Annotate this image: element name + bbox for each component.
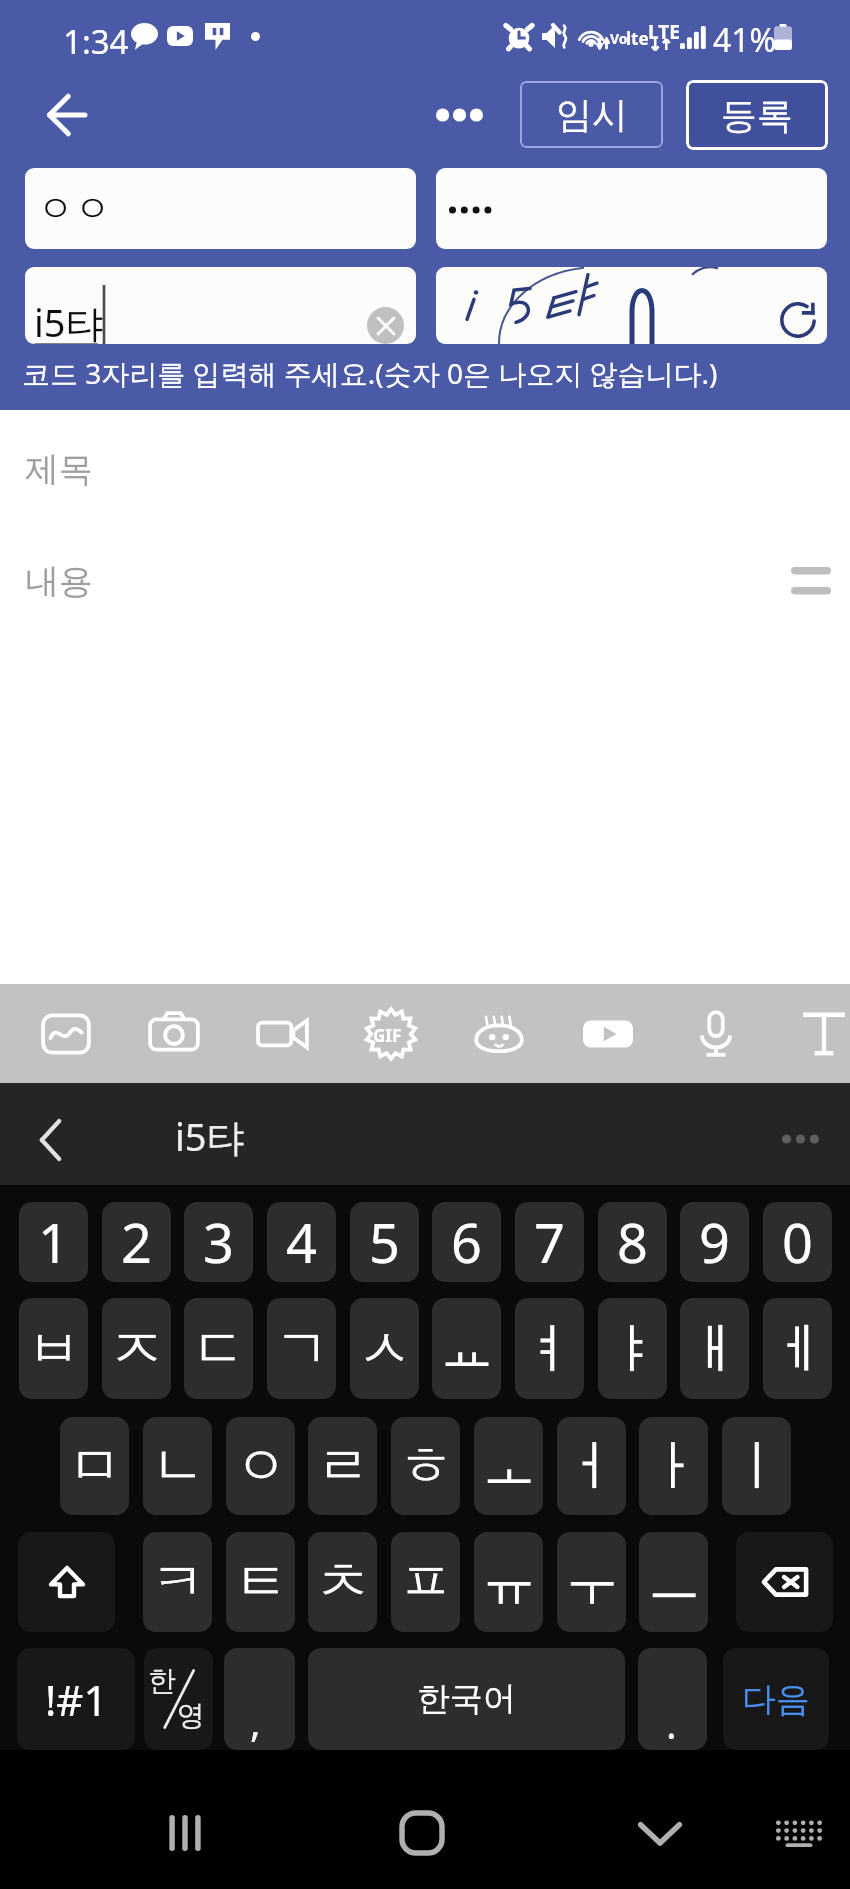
staticText: i5탸 (175, 1110, 245, 1162)
button[interactable]: Shift (18, 1532, 115, 1632)
button[interactable]: ㄹ (308, 1417, 377, 1515)
button[interactable]: ㅊ (308, 1532, 377, 1632)
staticText: ㅂ (27, 1315, 81, 1383)
button[interactable]: GIF (339, 988, 443, 1079)
button[interactable]: 2 (102, 1202, 171, 1282)
button[interactable]: Hide keyboard (605, 1783, 715, 1883)
button[interactable]: 한국어 (308, 1648, 625, 1750)
button[interactable]: 6 (432, 1202, 501, 1282)
button[interactable]: ㅕ (515, 1298, 584, 1399)
button[interactable]: ㅣ (722, 1417, 791, 1515)
staticText: ㅍ (399, 1548, 453, 1616)
staticText: 다음 (742, 1678, 810, 1721)
staticText: ㅛ (440, 1315, 494, 1383)
button[interactable]: ㅜ (557, 1532, 626, 1632)
staticText: ㅎ (399, 1432, 453, 1500)
staticText: ㅜ (565, 1548, 619, 1616)
button[interactable]: ㅈ (102, 1298, 171, 1399)
button[interactable]: Keyboard switcher (745, 1783, 850, 1883)
staticText: lte (626, 27, 649, 50)
staticText: ㅗ (482, 1432, 536, 1500)
button[interactable]: ㅂ (19, 1298, 88, 1399)
button[interactable]: 임시 (520, 81, 663, 148)
button[interactable]: ㅅ (350, 1298, 419, 1399)
button[interactable]: ㅡ (639, 1532, 708, 1632)
staticText: ㅁ (68, 1432, 122, 1500)
button[interactable]: Clear text (367, 307, 404, 344)
button[interactable]: ㅇ (226, 1417, 295, 1515)
button[interactable]: ㅏ (639, 1417, 708, 1515)
staticText: !#1 (45, 1671, 108, 1728)
button[interactable]: Text formatting (780, 550, 842, 612)
button[interactable]: 4 (267, 1202, 336, 1282)
button[interactable]: 다음 (723, 1648, 829, 1750)
button[interactable]: Refresh captcha (436, 267, 827, 344)
button[interactable]: 8 (598, 1202, 667, 1282)
button[interactable]: Voice input (664, 988, 768, 1079)
button[interactable]: ㅌ (226, 1532, 295, 1632)
staticText: ㅌ (234, 1548, 288, 1616)
staticText: 4 (286, 1205, 317, 1279)
button[interactable]: !#1 (17, 1648, 135, 1750)
staticText: 2 (121, 1205, 152, 1279)
button[interactable]: ㄴ (143, 1417, 212, 1515)
staticText: , (250, 1694, 261, 1748)
button[interactable]: 등록 (686, 80, 828, 150)
staticText: ㅔ (771, 1315, 825, 1383)
button[interactable]: More (768, 1114, 832, 1164)
button[interactable]: More options (424, 88, 494, 142)
button[interactable]: Video (231, 988, 335, 1079)
staticText: ㅕ (523, 1315, 577, 1383)
button[interactable] (436, 168, 827, 249)
button[interactable]: Switch language (144, 1648, 213, 1750)
staticText: ㅏ (647, 1432, 701, 1500)
staticText: ㅐ (688, 1315, 742, 1383)
staticText: ㅡ (647, 1548, 701, 1616)
staticText: . (666, 1696, 677, 1750)
button[interactable]: 1 (19, 1202, 88, 1282)
staticText: ㄴ (151, 1432, 205, 1500)
button[interactable]: ㄱ (267, 1298, 336, 1399)
button[interactable]: YouTube (556, 988, 660, 1079)
button[interactable]: Text style (772, 988, 850, 1079)
staticText: 7 (534, 1205, 565, 1279)
button[interactable]: ㅁ (60, 1417, 129, 1515)
button[interactable]: Home (367, 1783, 477, 1883)
button[interactable]: ㅐ (680, 1298, 749, 1399)
button[interactable]: , (224, 1648, 295, 1750)
button[interactable]: Recents (130, 1783, 240, 1883)
staticText: 한 (148, 1663, 176, 1698)
button[interactable]: ㅎ (391, 1417, 460, 1515)
button[interactable]: 5 (350, 1202, 419, 1282)
staticText: 0 (782, 1205, 813, 1279)
button[interactable]: Camera (122, 988, 226, 1079)
button[interactable]: ㅍ (391, 1532, 460, 1632)
button[interactable]: Backspace (736, 1532, 833, 1632)
button[interactable]: ㅠ (474, 1532, 543, 1632)
button[interactable]: ㅔ (763, 1298, 832, 1399)
button[interactable]: Refresh captcha (770, 295, 826, 344)
button[interactable]: ㅑ (598, 1298, 667, 1399)
button[interactable]: ㅇㅇ (25, 168, 416, 249)
button[interactable]: ㄷ (184, 1298, 253, 1399)
button[interactable]: ㅛ (432, 1298, 501, 1399)
button[interactable]: . (638, 1648, 707, 1750)
button[interactable]: Sticker (447, 988, 551, 1079)
staticText: ㅈ (110, 1315, 164, 1383)
button[interactable]: i5탸 (25, 267, 416, 344)
button[interactable]: 9 (680, 1202, 749, 1282)
button[interactable]: ㅋ (143, 1532, 212, 1632)
button[interactable]: Photo (14, 988, 118, 1079)
button[interactable]: 0 (763, 1202, 832, 1282)
button[interactable]: ㅓ (557, 1417, 626, 1515)
button[interactable]: 3 (184, 1202, 253, 1282)
staticText: ㅠ (482, 1548, 536, 1616)
staticText: ㅇㅇ (37, 185, 111, 232)
button[interactable]: Previous suggestion (22, 1113, 78, 1167)
button[interactable]: Back (31, 85, 103, 145)
staticText: ㅇ (234, 1432, 288, 1500)
staticText: 한국어 (417, 1678, 516, 1720)
button[interactable]: 7 (515, 1202, 584, 1282)
staticText: ㅅ (358, 1315, 412, 1383)
button[interactable]: ㅗ (474, 1417, 543, 1515)
